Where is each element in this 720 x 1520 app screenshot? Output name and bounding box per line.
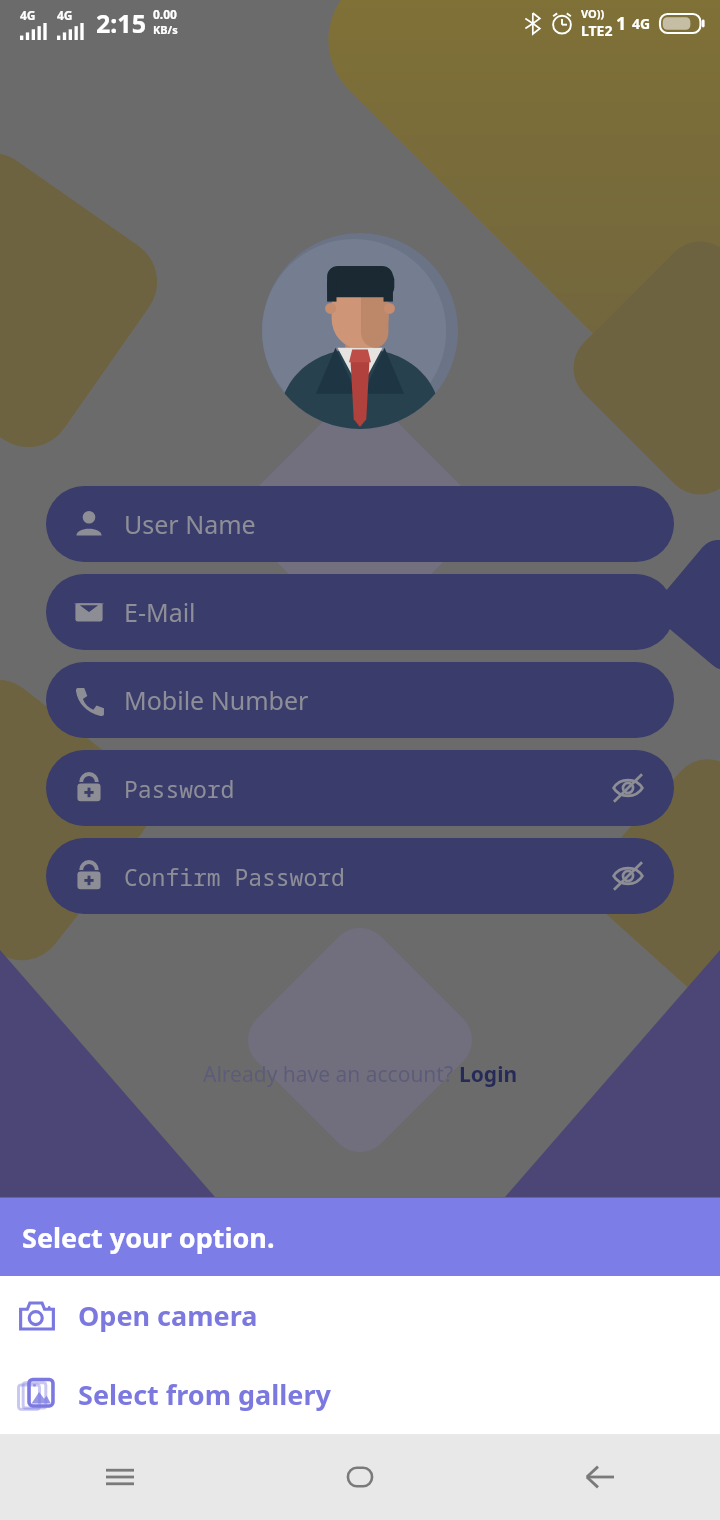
- button[interactable]: Recents: [0, 1434, 240, 1520]
- staticText: KB/s: [153, 22, 178, 37]
- button[interactable]: Open camera: [0, 1276, 720, 1355]
- button[interactable]: Login: [459, 1060, 518, 1089]
- button[interactable]: Password: [46, 750, 674, 826]
- staticText: Select your option.: [22, 1219, 275, 1256]
- staticText: Mobile Number: [124, 683, 309, 717]
- staticText: Password: [124, 773, 235, 804]
- staticText: Open camera: [78, 1297, 258, 1334]
- staticText: Confirm Password: [124, 861, 345, 892]
- button[interactable]: Select your option.: [0, 1198, 720, 1276]
- staticText: Already have an account?: [203, 1060, 459, 1089]
- staticText: 4G: [20, 7, 36, 23]
- staticText: 0.00: [153, 6, 177, 22]
- staticText: VO)): [581, 6, 605, 21]
- staticText: 4G: [632, 14, 651, 33]
- staticText: 2:15: [96, 6, 146, 40]
- button[interactable]: E-Mail: [46, 574, 674, 650]
- staticText: 4G: [57, 7, 73, 23]
- button[interactable]: Back: [480, 1434, 720, 1520]
- staticText: User Name: [124, 507, 256, 541]
- button[interactable]: Select from gallery: [0, 1355, 720, 1434]
- staticText: Login: [459, 1060, 518, 1089]
- staticText: 1: [616, 11, 627, 36]
- button[interactable]: User Name: [46, 486, 674, 562]
- button[interactable]: Show password: [608, 856, 648, 896]
- staticText: LTE2: [581, 21, 613, 40]
- staticText: Select from gallery: [78, 1376, 331, 1413]
- staticText: E-Mail: [124, 595, 196, 629]
- button[interactable]: Home: [240, 1434, 480, 1520]
- button[interactable]: Show password: [608, 768, 648, 808]
- button[interactable]: Mobile Number: [46, 662, 674, 738]
- button[interactable]: Confirm Password: [46, 838, 674, 914]
